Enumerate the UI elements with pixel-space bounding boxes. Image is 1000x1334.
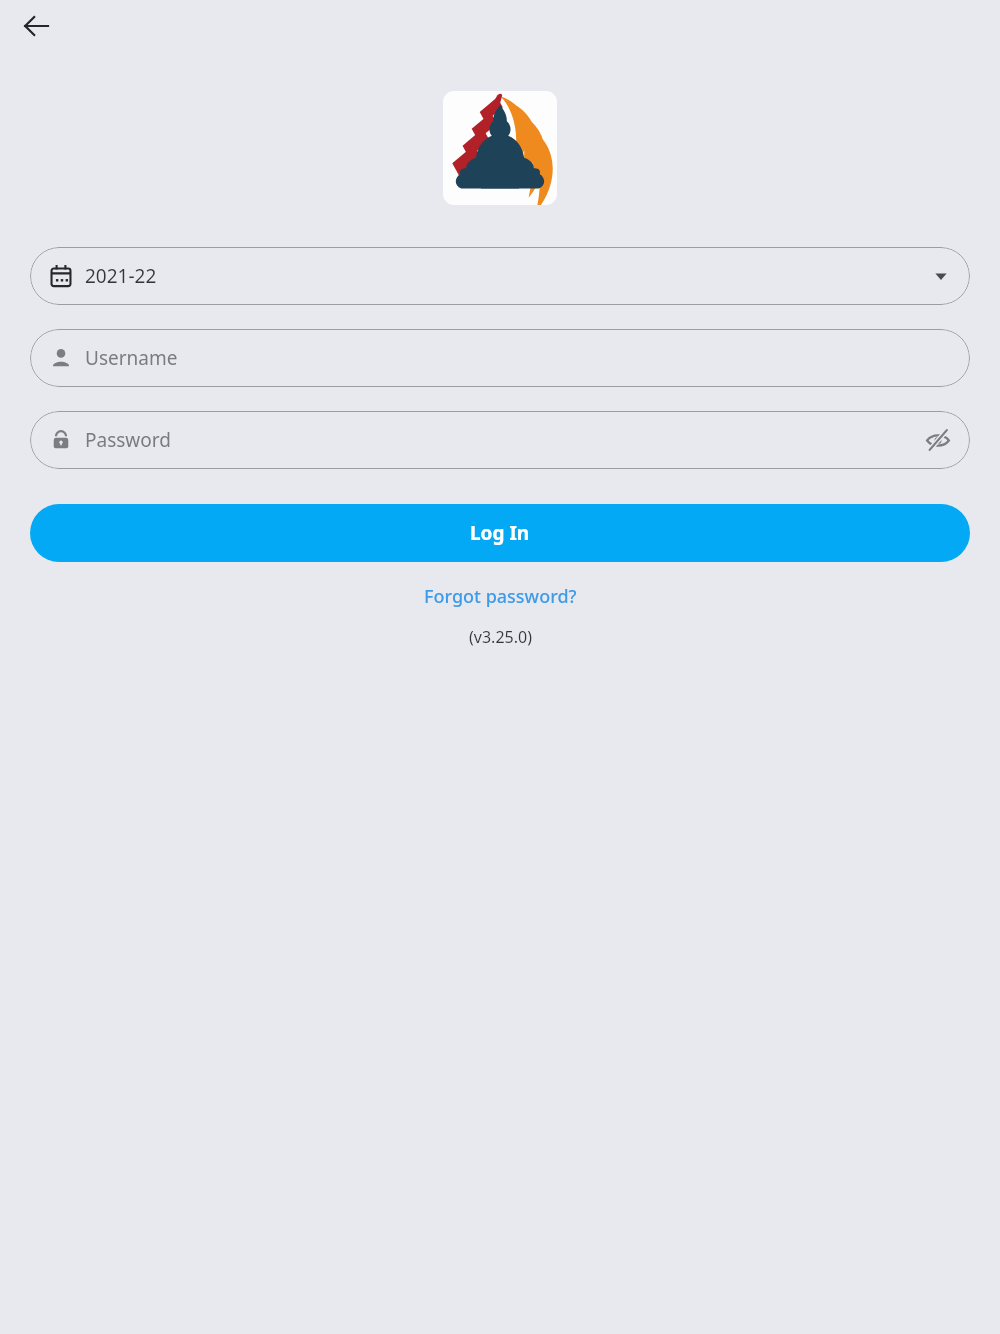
staticText: (v3.25.0)	[469, 626, 532, 648]
staticText: Username	[85, 345, 178, 371]
button[interactable]: Show password	[914, 416, 962, 464]
button[interactable]: Log In	[30, 504, 970, 562]
staticText: Log In	[470, 520, 530, 546]
staticText: 2021-22	[85, 263, 157, 289]
button[interactable]: Username	[30, 329, 970, 387]
button[interactable]: Back	[10, 0, 62, 52]
button[interactable]: Password	[30, 411, 970, 469]
button[interactable]: Forgot password?	[414, 580, 587, 613]
staticText: Password	[85, 427, 171, 453]
staticText: Forgot password?	[424, 584, 577, 609]
button[interactable]: 2021-22	[30, 247, 970, 305]
